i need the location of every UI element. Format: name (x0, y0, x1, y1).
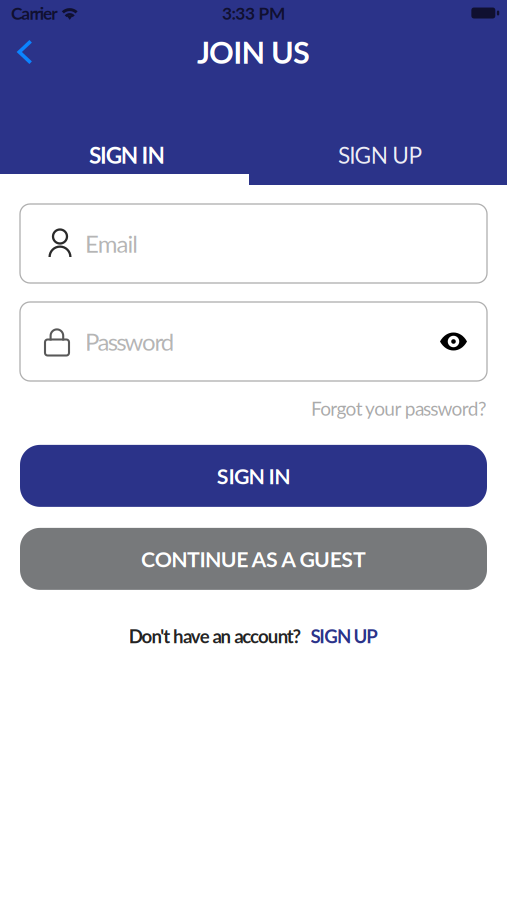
button[interactable]: SIGN UP (253, 136, 507, 174)
staticText: SIGN IN (89, 141, 164, 169)
button[interactable]: Back (0, 30, 50, 74)
button[interactable]: SIGN UP (311, 625, 378, 647)
button[interactable]: Forgot your password? (311, 397, 487, 420)
button[interactable]: CONTINUE AS A GUEST (20, 528, 487, 590)
button[interactable]: SIGN IN (20, 445, 487, 507)
staticText: Carrier (11, 3, 57, 23)
staticText: Don't have an account? (129, 625, 301, 647)
staticText: JOIN US (197, 34, 310, 70)
staticText: Password (85, 327, 174, 356)
staticText: SIGN UP (311, 625, 378, 647)
staticText: SIGN IN (217, 463, 290, 489)
staticText: Email (85, 229, 138, 258)
staticText: SIGN UP (338, 141, 422, 169)
staticText: 3:33 PM (222, 3, 285, 23)
button[interactable]: Show password (420, 302, 487, 381)
button[interactable]: SIGN IN (0, 136, 253, 174)
staticText: CONTINUE AS A GUEST (141, 546, 366, 572)
staticText: Forgot your password? (311, 397, 487, 420)
